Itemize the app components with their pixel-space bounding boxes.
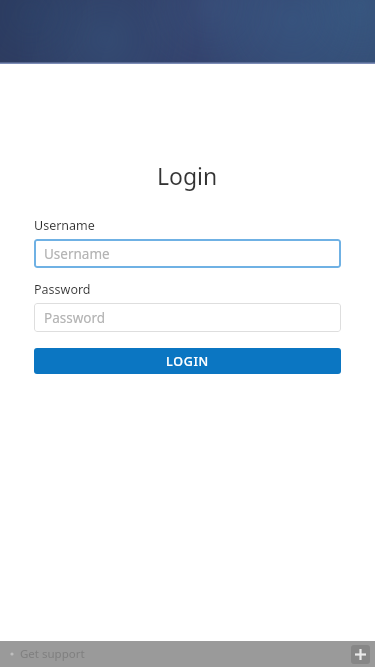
button[interactable]: Username <box>34 239 341 268</box>
staticText: Password <box>34 281 91 298</box>
staticText: Username <box>34 217 95 234</box>
button[interactable]: Add <box>351 645 370 664</box>
staticText: Login <box>157 160 218 191</box>
button[interactable]: LOGIN <box>34 348 341 374</box>
button[interactable]: Get support <box>6 646 87 662</box>
staticText: Get support <box>20 646 85 662</box>
staticText: Username <box>44 245 110 263</box>
button[interactable]: Password <box>34 303 341 332</box>
staticText: LOGIN <box>166 353 209 370</box>
staticText: Password <box>44 309 106 327</box>
